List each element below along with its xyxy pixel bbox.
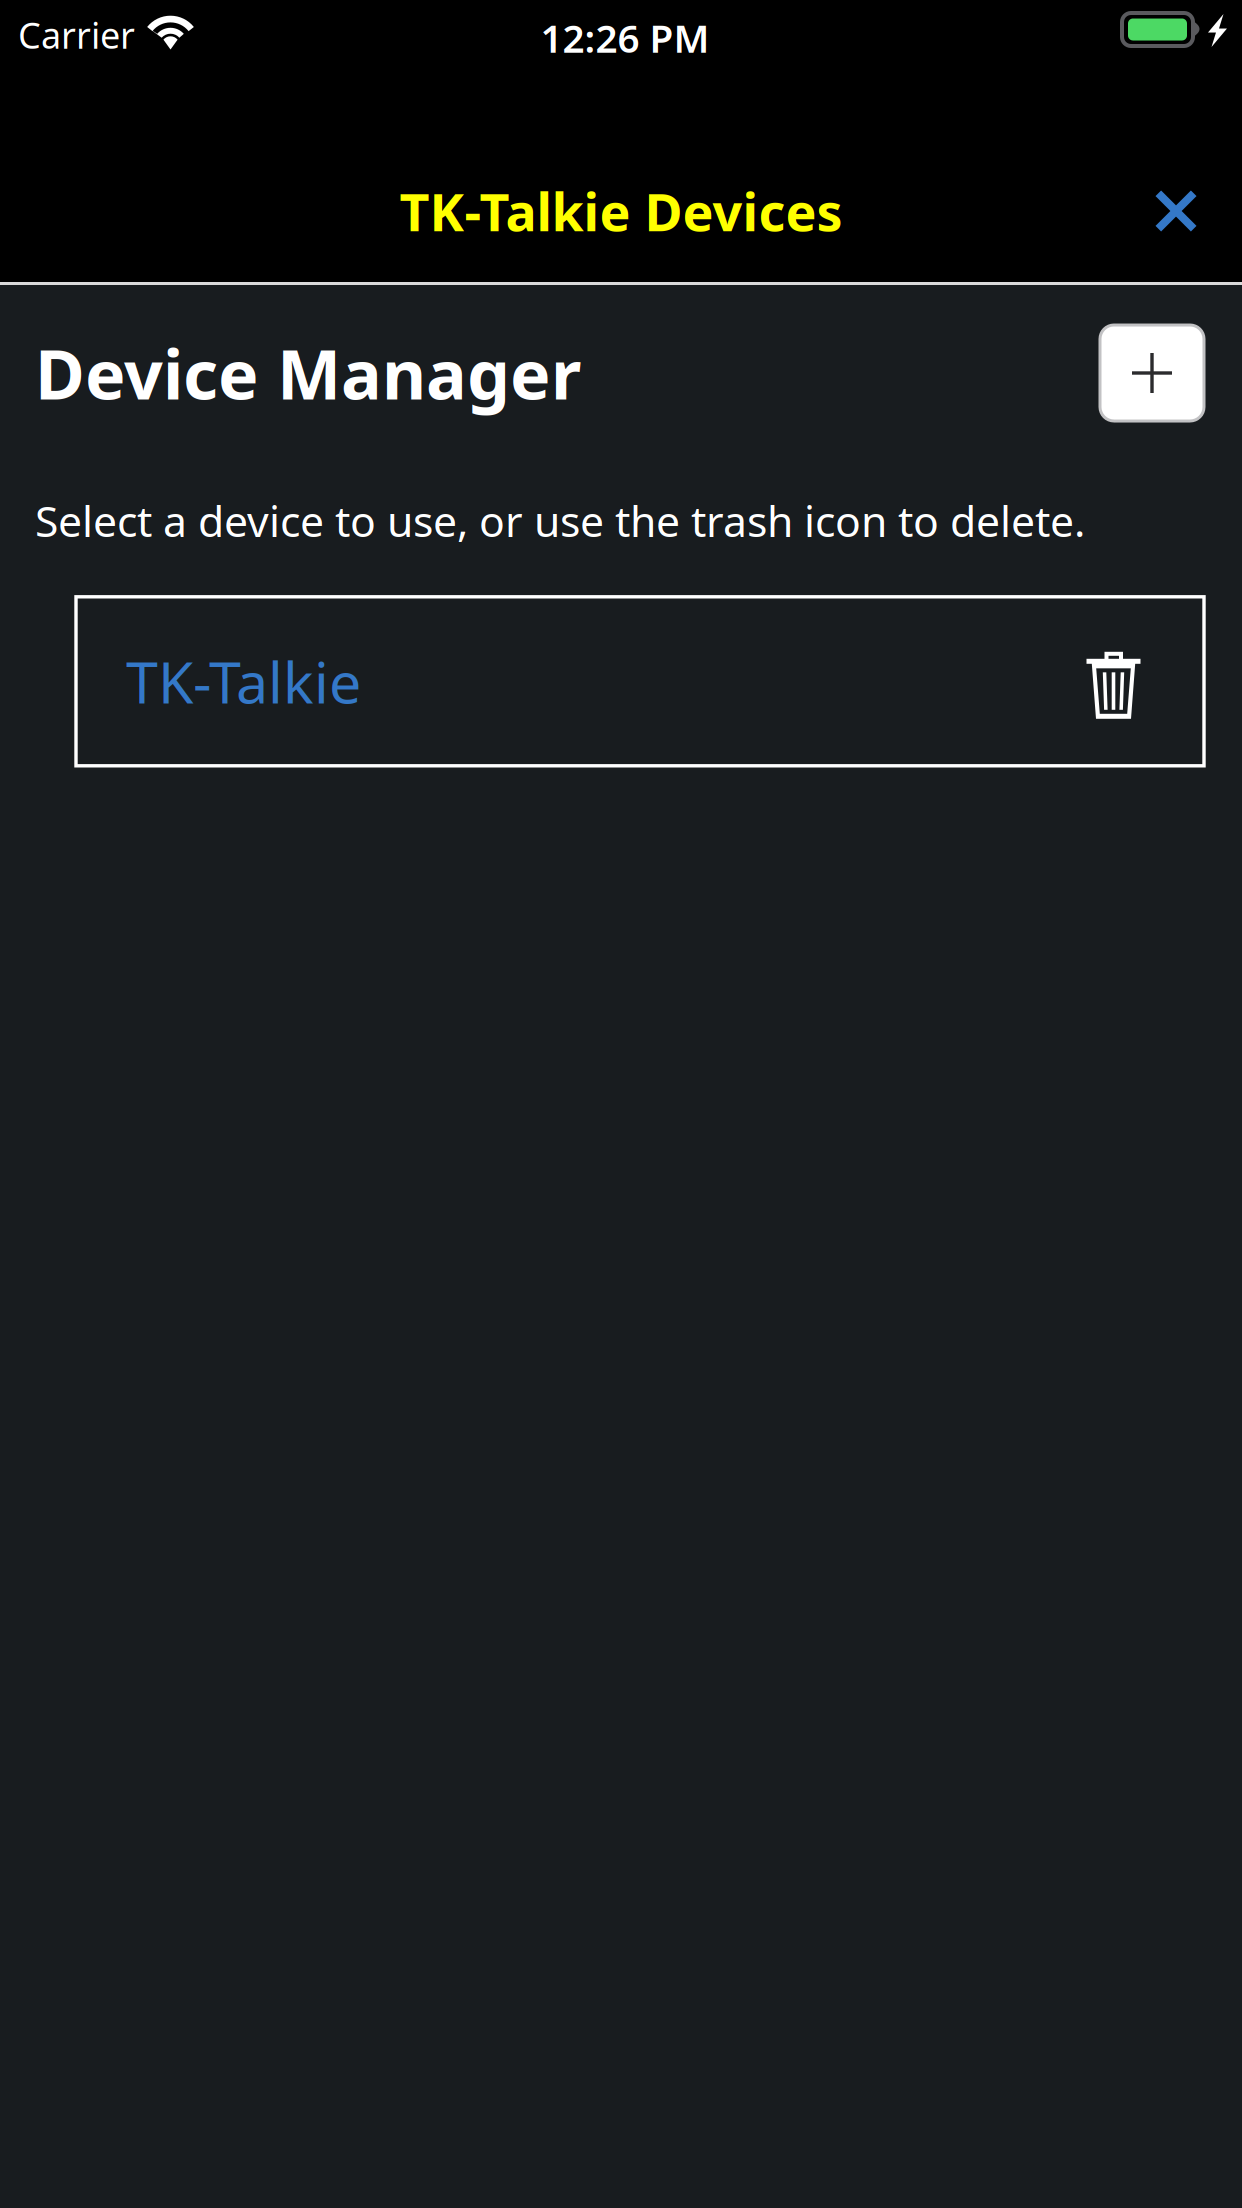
staticText: Device Manager bbox=[35, 328, 581, 418]
button[interactable]: Add device bbox=[1100, 325, 1204, 421]
button[interactable]: TK-Talkie bbox=[76, 597, 1204, 766]
staticText: TK-Talkie bbox=[126, 643, 361, 719]
button[interactable]: Close bbox=[1128, 163, 1224, 259]
staticText: TK-Talkie Devices bbox=[399, 176, 842, 246]
staticText: Carrier bbox=[18, 11, 135, 59]
staticText: Select a device to use, or use the trash… bbox=[35, 492, 1085, 549]
staticText: 12:26 PM bbox=[540, 12, 709, 63]
